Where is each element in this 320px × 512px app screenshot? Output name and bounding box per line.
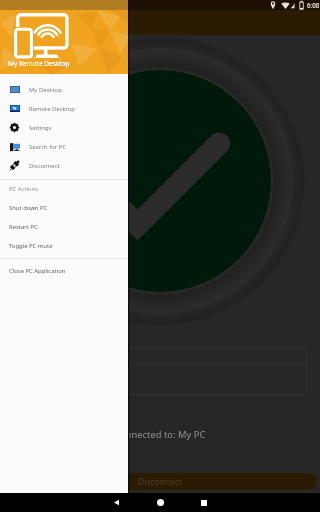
staticText: Remote Desktop xyxy=(29,105,75,113)
staticText: Search for PC xyxy=(29,143,67,151)
staticText: Shut down PC xyxy=(9,204,48,212)
button[interactable]: Remote Desktop xyxy=(0,99,128,118)
button[interactable]: Back xyxy=(94,493,138,512)
staticText: PC Actions xyxy=(9,185,39,193)
button[interactable]: Settings xyxy=(0,118,128,137)
staticText: 6:08 xyxy=(307,1,320,9)
button[interactable]: Home xyxy=(138,493,182,512)
staticText: My Desktop xyxy=(29,86,62,94)
button[interactable]: Shut down PC xyxy=(0,198,128,217)
staticText: Restart PC xyxy=(9,223,38,231)
button[interactable]: Disconnect xyxy=(0,156,128,175)
button[interactable]: Restart PC xyxy=(0,217,128,236)
button[interactable]: Disconnect xyxy=(3,473,317,490)
staticText: Settings xyxy=(29,124,52,132)
button[interactable]: PC Actions xyxy=(0,180,128,198)
button[interactable]: Recents xyxy=(182,493,226,512)
button[interactable]: My Desktop xyxy=(0,80,128,99)
staticText: Disconnect xyxy=(29,162,60,170)
staticText: My Remote Desktop xyxy=(8,59,70,68)
staticText: Toggle PC mute xyxy=(9,242,53,250)
button[interactable]: Close PC Application xyxy=(0,261,128,280)
button[interactable]: Toggle PC mute xyxy=(0,236,128,255)
staticText: Close PC Application xyxy=(9,267,66,275)
button[interactable] xyxy=(13,347,307,395)
button[interactable]: Search for PC xyxy=(0,137,128,156)
staticText: Connected to: My PC xyxy=(114,428,206,441)
staticText: Disconnect xyxy=(138,476,183,488)
